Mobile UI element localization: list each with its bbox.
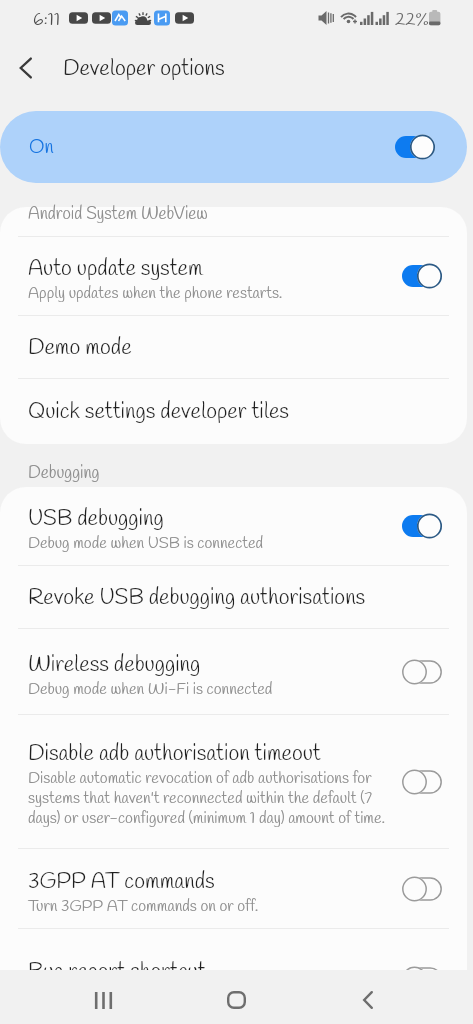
button[interactable]: Switch off <box>402 876 442 902</box>
staticText: Bug report shortcut <box>28 957 206 970</box>
staticText: Debug mode when USB is connected <box>28 533 264 554</box>
button[interactable]: Switch off <box>402 966 442 970</box>
staticText: On <box>29 135 54 160</box>
staticText: 3GPP AT commands <box>28 867 215 896</box>
staticText: Disable automatic revocation of adb auth… <box>28 768 390 830</box>
button[interactable]: Demo mode <box>0 316 467 378</box>
staticText: Demo mode <box>28 333 132 362</box>
button[interactable]: On <box>0 111 467 183</box>
staticText: USB debugging <box>28 504 164 533</box>
staticText: 6:11 <box>33 8 61 32</box>
staticText: Developer options <box>63 54 225 83</box>
button[interactable]: Back <box>0 42 52 94</box>
button[interactable]: Switch on <box>402 263 442 289</box>
button[interactable]: 3GPP AT commands <box>0 849 467 928</box>
staticText: 22% <box>395 8 429 32</box>
staticText: Debugging <box>28 462 100 485</box>
button[interactable]: Wireless debugging <box>0 629 467 714</box>
button[interactable]: Auto update system <box>0 237 467 315</box>
staticText: Debug mode when Wi-Fi is connected <box>28 679 273 700</box>
button[interactable]: Revoke USB debugging authorisations <box>0 566 467 628</box>
staticText: Wireless debugging <box>28 650 201 679</box>
button[interactable]: Disable adb authorisation timeout <box>0 715 467 848</box>
staticText: Revoke USB debugging authorisations <box>28 583 366 612</box>
staticText: Disable adb authorisation timeout <box>28 739 321 768</box>
button[interactable]: Back <box>344 976 392 1024</box>
button[interactable]: Home <box>212 976 260 1024</box>
staticText: Android System WebView <box>28 203 208 226</box>
button[interactable]: Bug report shortcut <box>0 929 467 970</box>
button[interactable]: USB debugging <box>0 487 467 565</box>
staticText: Quick settings developer tiles <box>28 397 289 426</box>
staticText: Turn 3GPP AT commands on or off. <box>28 896 259 917</box>
button[interactable]: Quick settings developer tiles <box>0 379 467 444</box>
button[interactable]: Switch on <box>395 134 435 160</box>
staticText: Apply updates when the phone restarts. <box>28 283 283 304</box>
button[interactable]: Switch on <box>402 513 442 539</box>
button[interactable]: Switch off <box>402 659 442 685</box>
staticText: Auto update system <box>28 254 203 283</box>
button[interactable]: Switch off <box>402 769 442 795</box>
button[interactable]: Recent apps <box>79 976 127 1024</box>
